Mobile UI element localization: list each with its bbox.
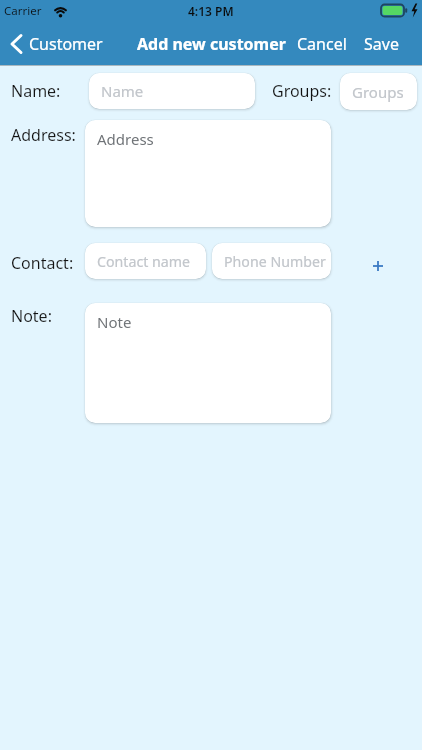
staticText: Save	[364, 33, 399, 55]
staticText: Add new customer	[137, 33, 286, 55]
button[interactable]: Note	[85, 303, 331, 423]
button[interactable]: Contact name	[85, 243, 206, 279]
staticText: Note:	[11, 305, 52, 327]
staticText: Phone Number	[224, 252, 326, 271]
staticText: 4:13 PM	[188, 3, 234, 19]
staticText: Groups:	[272, 80, 332, 102]
button[interactable]: Customer	[8, 22, 82, 65]
staticText: Name:	[11, 80, 61, 102]
button[interactable]: Save	[364, 22, 399, 65]
button[interactable]: Address	[85, 120, 331, 227]
staticText: Address:	[11, 124, 76, 146]
button[interactable]: Phone Number	[212, 243, 331, 279]
staticText: Cancel	[297, 33, 347, 55]
staticText: Note	[97, 312, 132, 332]
staticText: Customer	[29, 33, 103, 55]
staticText: Contact name	[97, 252, 191, 271]
staticText: Address	[97, 129, 154, 149]
button[interactable]: Cancel	[297, 22, 347, 65]
button[interactable]: Name	[89, 73, 255, 109]
staticText: Carrier	[4, 3, 42, 19]
staticText: Name	[101, 81, 144, 101]
button[interactable]: Groups	[340, 73, 417, 110]
button[interactable]	[366, 254, 390, 278]
staticText: Groups	[352, 82, 404, 102]
staticText: Contact:	[11, 252, 74, 274]
